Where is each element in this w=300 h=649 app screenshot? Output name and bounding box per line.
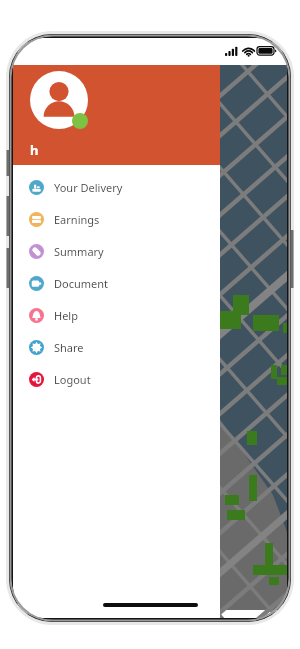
button[interactable]: Earnings — [13, 203, 220, 235]
button[interactable]: Logout — [13, 363, 220, 395]
button[interactable]: Share — [13, 331, 220, 363]
staticText: 9:41 — [26, 44, 48, 59]
staticText: Help — [54, 308, 78, 323]
staticText: h — [30, 141, 39, 159]
staticText: Summary — [54, 244, 104, 259]
staticText: Share — [54, 340, 84, 355]
button[interactable]: Help — [13, 299, 220, 331]
staticText: Document — [54, 276, 109, 291]
button[interactable]: Document — [13, 267, 220, 299]
button[interactable]: Your Delivery — [13, 171, 220, 203]
staticText: Earnings — [54, 212, 100, 227]
staticText: Your Delivery — [54, 180, 123, 195]
staticText: Logout — [54, 372, 91, 387]
button[interactable]: Summary — [13, 235, 220, 267]
